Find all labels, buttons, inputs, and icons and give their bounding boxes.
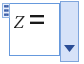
- other: Scroll down: [64, 45, 75, 52]
- button[interactable]: Drag handle: [2, 3, 10, 18]
- button[interactable]: Scrollbar: [60, 1, 79, 62]
- button[interactable]: Z: [9, 3, 60, 56]
- staticText: Z: [14, 10, 25, 32]
